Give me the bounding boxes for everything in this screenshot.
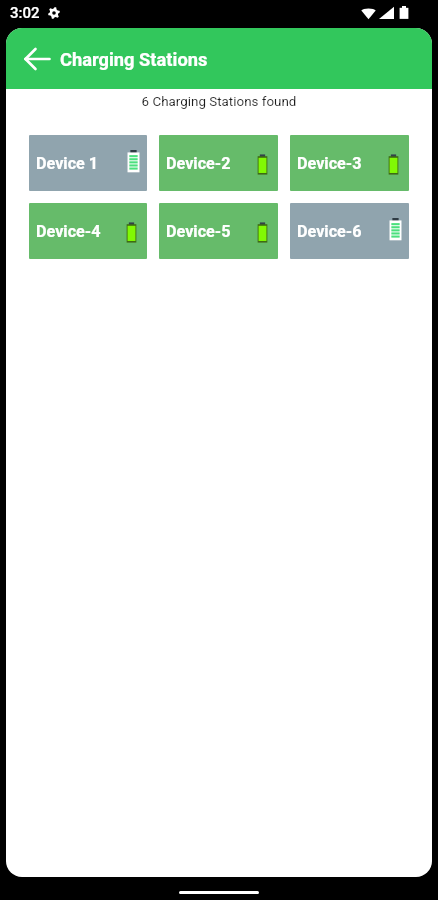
button[interactable]: Device-6 — [290, 203, 409, 259]
button[interactable]: Back — [21, 39, 54, 79]
staticText: Device-2 — [166, 154, 231, 173]
button[interactable]: Device-5 — [159, 203, 278, 259]
staticText: Device-4 — [36, 222, 101, 241]
staticText: Device-3 — [297, 154, 362, 173]
staticText: 3:02 — [10, 4, 40, 22]
staticText: Device-6 — [297, 222, 362, 241]
staticText: Device 1 — [36, 154, 99, 173]
staticText: 6 Charging Stations found — [6, 94, 432, 110]
button[interactable]: Device-2 — [159, 135, 278, 191]
button[interactable]: Device-3 — [290, 135, 409, 191]
button[interactable]: Device-4 — [29, 203, 147, 259]
staticText: Device-5 — [166, 222, 231, 241]
button[interactable]: Device 1 — [29, 135, 147, 191]
staticText: Charging Stations — [60, 49, 208, 70]
